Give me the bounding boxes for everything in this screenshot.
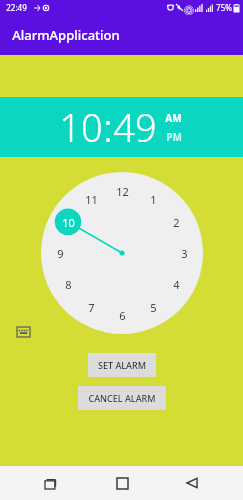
button[interactable]: Home (102, 466, 142, 500)
staticText: 6 (119, 308, 126, 323)
staticText: AM (165, 111, 182, 125)
button[interactable]: PM (164, 129, 184, 145)
staticText: 9 (57, 246, 64, 261)
staticText: 4 (173, 277, 180, 292)
staticText: 3 (181, 246, 188, 261)
staticText: PM (166, 130, 182, 144)
staticText: : (103, 101, 113, 153)
staticText: 12 (116, 184, 129, 199)
staticText: 49 (113, 101, 157, 153)
staticText: 75% (216, 2, 232, 13)
staticText: CANCEL ALARM (88, 392, 156, 404)
staticText: 1 (150, 192, 157, 207)
staticText: SET ALARM (98, 359, 146, 371)
staticText: AlarmApplication (12, 26, 120, 44)
button[interactable]: CANCEL ALARM (78, 386, 166, 410)
button[interactable]: 49 (113, 101, 157, 153)
button[interactable]: Recent apps (31, 466, 71, 500)
button[interactable]: SET ALARM (88, 353, 156, 377)
button[interactable]: 1 (41, 172, 203, 334)
staticText: 10 (59, 101, 103, 153)
staticText: 5 (150, 300, 157, 315)
staticText: 22:49 (6, 2, 27, 13)
button[interactable]: AM (163, 110, 184, 126)
staticText: 7 (88, 300, 95, 315)
staticText: 11 (85, 192, 98, 207)
staticText: 10 (62, 215, 75, 230)
staticText: 2 (173, 215, 180, 230)
staticText: 8 (65, 277, 72, 292)
button[interactable]: 10 (59, 101, 103, 153)
button[interactable]: Back (172, 466, 212, 500)
button[interactable]: Switch to text input mode (14, 323, 32, 341)
